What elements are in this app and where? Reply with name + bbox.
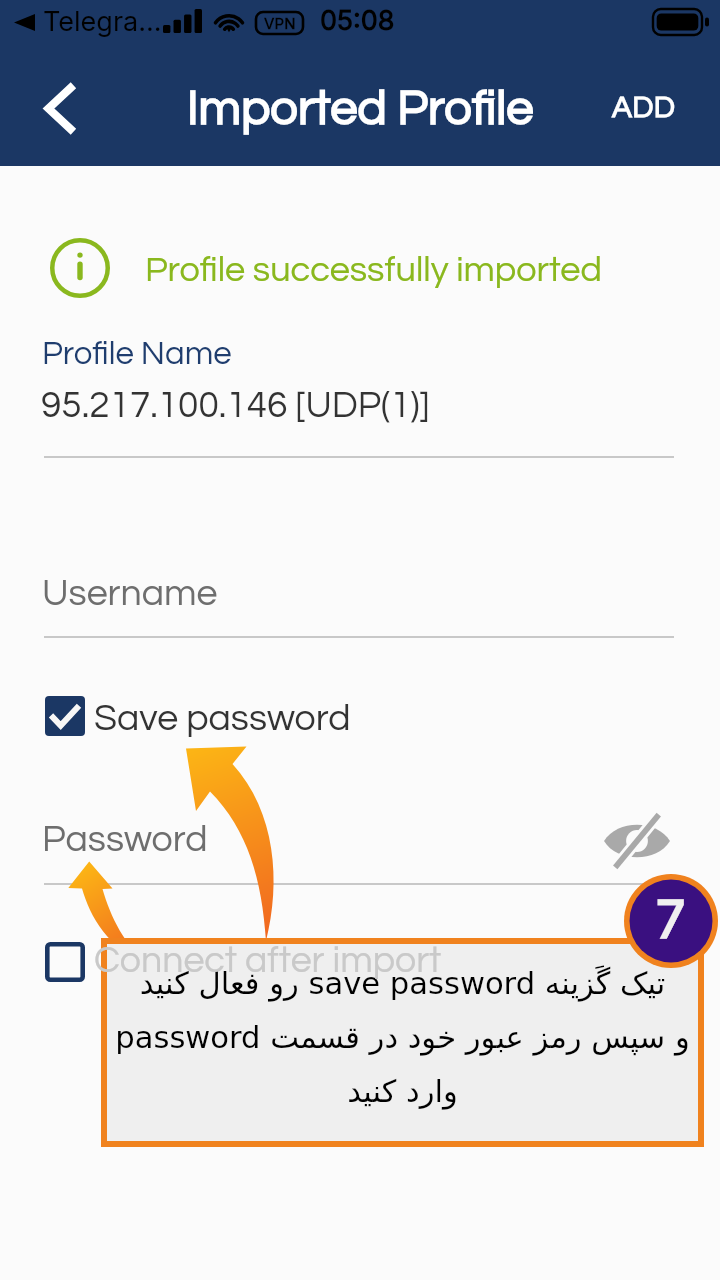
staticText: Connect after import [94,941,442,980]
staticText: تیک گَزینه save password رو فعال کنید و … [107,966,698,1109]
button[interactable] [44,694,364,744]
staticText: Profile Name [42,337,232,371]
button[interactable]: Show password [604,808,670,874]
staticText: 7 [656,888,686,951]
staticText: Telegra... [43,5,162,38]
staticText: ADD [612,92,676,123]
staticText: VPN [264,14,296,32]
staticText: Save password [94,699,351,738]
staticText: Profile successfully imported [145,251,602,288]
staticText: 05:08 [320,4,395,37]
button[interactable]: ADD [598,85,690,129]
staticText: 95.217.100.146 [UDP(1)] [41,387,430,425]
button[interactable]: Back [26,76,90,140]
button[interactable] [44,938,444,986]
staticText: Username [42,574,218,613]
staticText: Password [42,820,208,859]
staticText: Imported Profile [187,84,534,134]
